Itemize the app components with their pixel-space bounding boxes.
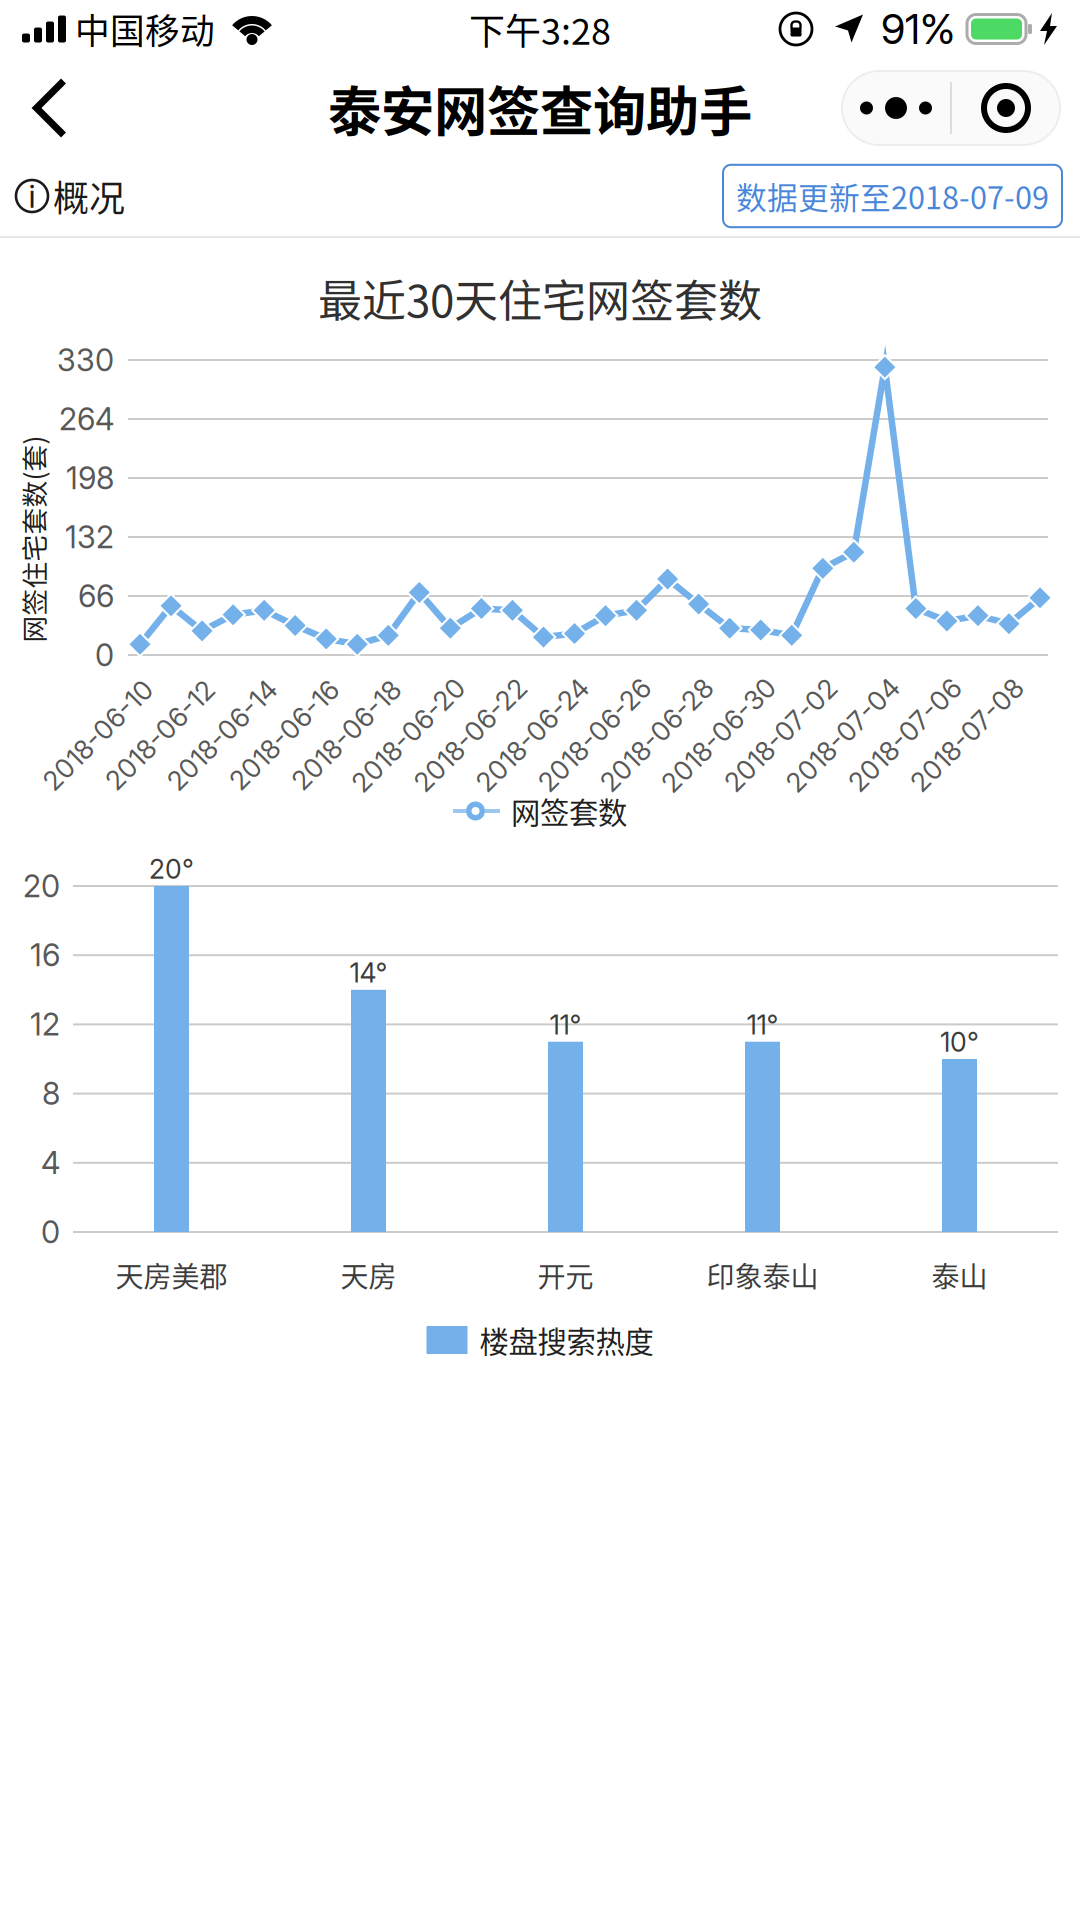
button[interactable]: Close mini program [952, 71, 1060, 145]
staticText: 数据更新至2018-07-09 [736, 174, 1049, 218]
staticText: 11° [549, 1009, 581, 1041]
staticText: 20° [149, 853, 194, 885]
staticText: 2018-06-26 [521, 719, 668, 751]
staticText: 天房 [340, 1255, 396, 1295]
staticText: 2018-06-14 [151, 719, 294, 751]
staticText: 20 [23, 867, 60, 904]
staticText: 2018-06-16 [213, 719, 355, 751]
staticText: 泰安网签查询助手 [328, 69, 752, 147]
staticText: 2018-06-22 [397, 719, 544, 751]
staticText: 330 [57, 341, 114, 378]
staticText: 91% [881, 4, 955, 54]
button[interactable]: Back [12, 70, 88, 146]
staticText: 2018-07-02 [707, 719, 854, 751]
staticText: 印象泰山 [706, 1255, 818, 1295]
staticText: 下午3:28 [469, 3, 611, 55]
staticText: 0 [95, 636, 114, 673]
staticText: 中国移动 [75, 4, 215, 54]
staticText: 14° [349, 957, 387, 989]
staticText: 0 [41, 1213, 60, 1250]
staticText: 2018-06-20 [334, 719, 482, 751]
staticText: 2018-06-18 [275, 719, 417, 751]
staticText: 10° [940, 1026, 979, 1058]
staticText: 2018-06-10 [26, 719, 169, 751]
staticText: 198 [66, 459, 114, 496]
button[interactable]: 数据更新至2018-07-09 [723, 165, 1062, 227]
staticText: 网签套数 [511, 790, 627, 832]
staticText: 2018-07-06 [831, 719, 978, 751]
staticText: 概况 [53, 170, 125, 222]
staticText: 开元 [537, 1255, 593, 1295]
staticText: 2018-06-12 [89, 719, 231, 751]
staticText: 16 [30, 937, 60, 974]
staticText: 网签住宅套数(套) [0, 520, 136, 558]
staticText: 天房美郡 [115, 1255, 227, 1295]
staticText: 11° [746, 1009, 778, 1041]
staticText: 132 [65, 518, 114, 555]
staticText: 泰山 [931, 1255, 987, 1295]
staticText: 4 [41, 1144, 60, 1181]
staticText: 2018-06-28 [583, 719, 730, 751]
staticText: 8 [42, 1075, 60, 1112]
staticText: 2018-07-08 [893, 719, 1040, 751]
staticText: 66 [78, 577, 114, 614]
staticText: 2018-06-24 [459, 719, 606, 751]
staticText: 2018-06-30 [644, 719, 793, 751]
staticText: 2018-07-04 [769, 719, 917, 751]
staticText: 264 [59, 400, 114, 437]
staticText: 12 [30, 1006, 60, 1043]
staticText: 楼盘搜索热度 [479, 1319, 653, 1361]
staticText: 最近30天住宅网签套数 [318, 266, 762, 330]
staticText: i [28, 177, 35, 215]
button[interactable]: More [842, 71, 950, 145]
